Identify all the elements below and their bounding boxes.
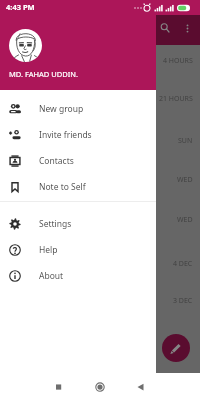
staticText: 4 DEC (173, 259, 193, 269)
button[interactable]: 4 HOURS (0, 45, 200, 83)
staticText: SUN (178, 136, 193, 146)
staticText: 4:43 PM (6, 2, 35, 12)
button[interactable]: 3 DEC (0, 285, 200, 325)
button[interactable]: Note to Self (0, 174, 156, 200)
button[interactable]: SUN (0, 125, 200, 164)
button[interactable]: WED (0, 204, 200, 248)
button[interactable]: 21 HOURS (0, 83, 200, 125)
button[interactable]: Contacts (0, 148, 156, 174)
staticText: Contacts (39, 155, 74, 167)
button[interactable]: New chat (162, 334, 190, 362)
staticText: 21 HOURS (159, 94, 193, 104)
button[interactable]: Invite friends (0, 122, 156, 148)
button[interactable]: 4 DEC (0, 248, 200, 285)
staticText: 4 HOURS (163, 56, 193, 66)
staticText: 3 DEC (173, 296, 193, 306)
staticText: MD. FAHAD UDDIN. (9, 69, 78, 79)
staticText: New group (39, 103, 84, 115)
staticText: Note to Self (39, 181, 86, 193)
button[interactable]: WED (0, 164, 200, 204)
staticText: Settings (39, 218, 72, 230)
staticText: Invite friends (39, 129, 92, 141)
staticText: WED (177, 215, 193, 225)
button[interactable]: Settings (0, 211, 156, 237)
staticText: Help (39, 244, 58, 256)
staticText: About (39, 270, 64, 282)
button[interactable]: Help (0, 237, 156, 263)
button[interactable]: More options (175, 15, 199, 45)
button[interactable]: New group (0, 96, 156, 122)
button[interactable]: About (0, 263, 156, 289)
button[interactable]: Search (153, 15, 177, 45)
staticText: WED (177, 175, 193, 185)
